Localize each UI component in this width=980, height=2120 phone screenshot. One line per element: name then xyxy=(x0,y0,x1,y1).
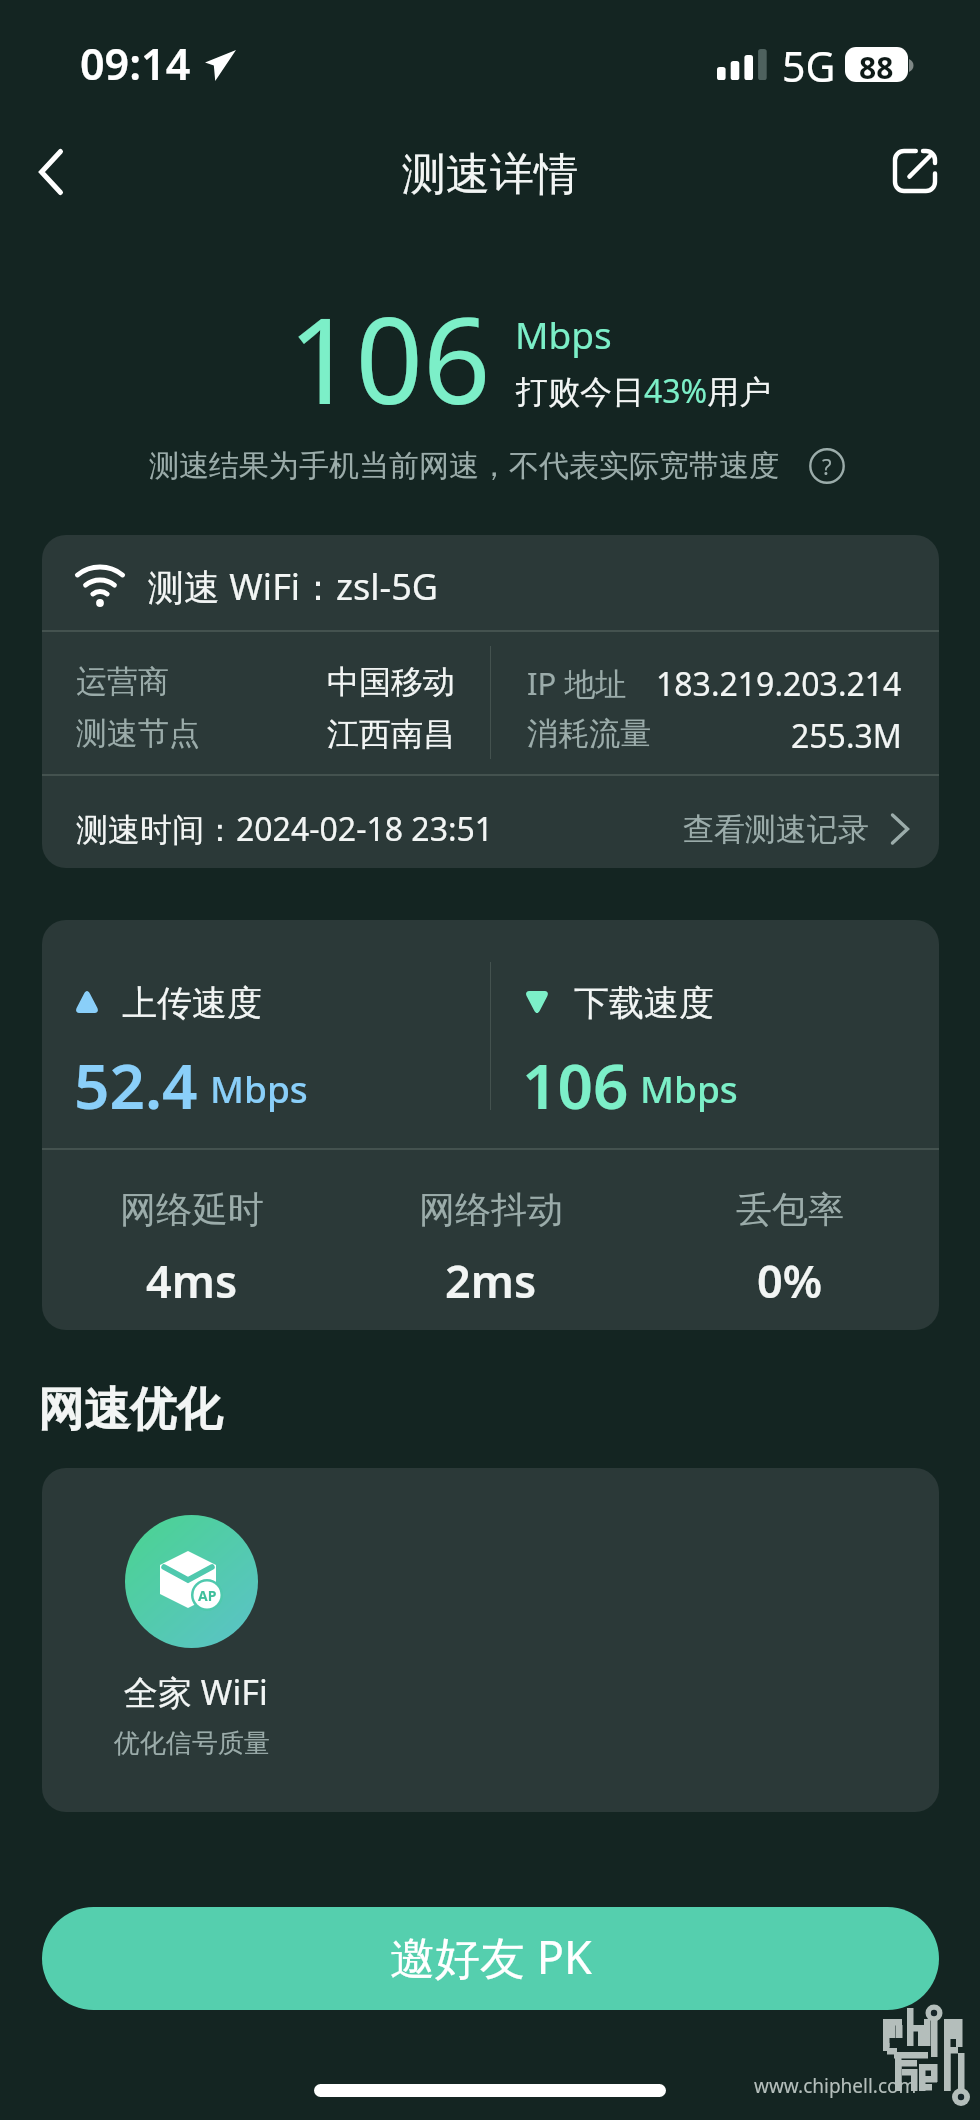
staticText: 丢包率 xyxy=(736,1187,844,1232)
staticText: IP 地址 xyxy=(527,662,627,704)
staticText: 优化信号质量 xyxy=(114,1727,270,1760)
staticText: ? xyxy=(822,451,832,481)
staticText: 消耗流量 xyxy=(527,714,651,753)
staticText: 全家 WiFi xyxy=(124,1669,268,1715)
staticText: www.chiphell.com xyxy=(754,2073,917,2099)
button[interactable]: Share xyxy=(873,116,957,200)
staticText: 网速优化 xyxy=(38,1381,222,1439)
staticText: 5G xyxy=(782,38,836,94)
staticText: 测速 WiFi：zsl-5G xyxy=(148,562,438,611)
staticText: 邀好友 PK xyxy=(390,1926,592,1987)
staticText: 上传速度 xyxy=(122,981,262,1025)
staticText: 江西南昌 xyxy=(327,714,455,754)
staticText: 运营商 xyxy=(76,662,169,701)
staticText: 88 xyxy=(859,47,894,82)
staticText: 查看测速记录 xyxy=(683,810,869,849)
staticText: 下载速度 xyxy=(574,981,714,1025)
staticText: 测速时间：2024-02-18 23:51 xyxy=(76,807,494,851)
staticText: 打败今日43%用户 xyxy=(516,369,772,413)
button[interactable]: 测速时间：2024-02-18 23:51 xyxy=(42,776,939,868)
staticText: 2ms xyxy=(445,1250,537,1311)
staticText: 09:14 xyxy=(80,34,191,93)
button[interactable]: 邀好友 PK xyxy=(42,1907,939,2010)
staticText: AP xyxy=(198,1586,217,1605)
staticText: 183.219.203.214 xyxy=(656,662,902,706)
staticText: 4ms xyxy=(146,1250,238,1311)
staticText: 测速详情 xyxy=(402,147,578,202)
button[interactable]: Help xyxy=(809,448,845,484)
staticText: 测速结果为手机当前网速，不代表实际宽带速度 xyxy=(149,447,779,485)
staticText: 网络延时 xyxy=(120,1187,264,1232)
staticText: 网络抖动 xyxy=(419,1187,563,1232)
button[interactable]: AP xyxy=(42,1468,939,1812)
staticText: Mbps xyxy=(210,1063,308,1113)
staticText: 255.3M xyxy=(791,714,902,758)
staticText: Mbps xyxy=(640,1063,738,1113)
staticText: 52.4 xyxy=(74,1043,198,1127)
button[interactable]: Back xyxy=(10,116,94,200)
staticText: 106 xyxy=(522,1043,629,1127)
staticText: 106 xyxy=(288,278,491,439)
staticText: 中国移动 xyxy=(327,662,455,702)
staticText: Mbps xyxy=(515,309,612,359)
staticText: 测速节点 xyxy=(76,714,200,753)
staticText: 0% xyxy=(757,1250,823,1311)
